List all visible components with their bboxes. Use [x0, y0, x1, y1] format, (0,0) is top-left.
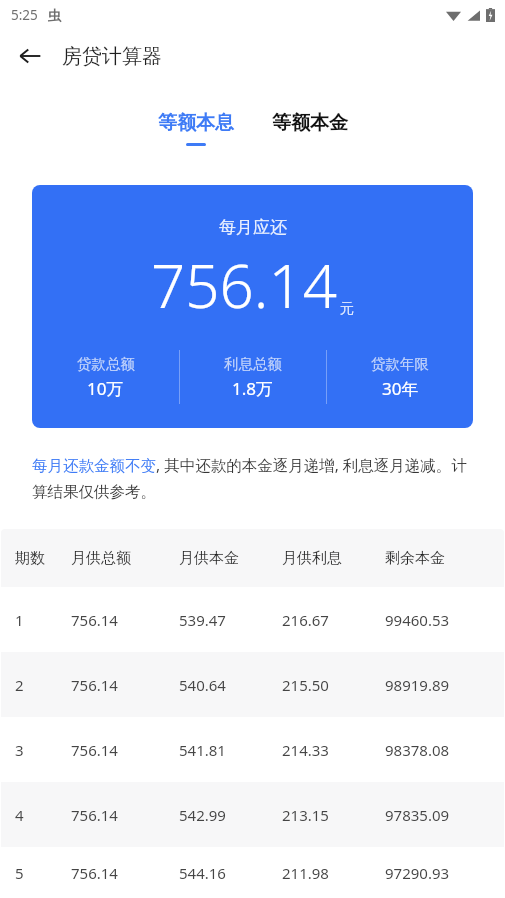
staticText: 756.14	[71, 675, 118, 695]
button[interactable]: 5	[1, 847, 504, 898]
button[interactable]: 3	[1, 717, 504, 782]
button[interactable]: 1	[1, 587, 504, 652]
staticText: 3	[15, 740, 24, 760]
staticText: 756.14	[71, 740, 118, 760]
staticText: 1	[15, 610, 24, 630]
staticText: 1.8万	[232, 377, 274, 400]
staticText: 98378.08	[385, 740, 450, 760]
staticText: 544.16	[179, 863, 226, 883]
staticText: 214.33	[282, 740, 329, 760]
staticText: 元	[340, 300, 354, 318]
button[interactable]: 2	[1, 652, 504, 717]
staticText: 利息总额	[224, 355, 282, 373]
staticText: 贷款年限	[371, 355, 429, 373]
staticText: 每月应还	[219, 217, 287, 238]
staticText: 539.47	[179, 610, 226, 630]
staticText: 虫	[48, 7, 62, 24]
staticText: 期数	[15, 549, 45, 568]
staticText: 215.50	[282, 675, 329, 695]
staticText: 542.99	[179, 805, 226, 825]
staticText: 756.14	[71, 805, 118, 825]
button[interactable]: 每月应还	[32, 185, 473, 428]
staticText: 5	[15, 863, 24, 883]
staticText: 4	[15, 805, 24, 825]
staticText: 98919.89	[385, 675, 450, 695]
staticText: 213.15	[282, 805, 329, 825]
staticText: 月供本金	[179, 549, 239, 568]
staticText: 97835.09	[385, 805, 450, 825]
button[interactable]: 4	[1, 782, 504, 847]
staticText: 99460.53	[385, 610, 450, 630]
staticText: 每月还款金额不变, 其中还款的本金逐月递增, 利息逐月递减。计算结果仅供参考。	[32, 454, 473, 502]
staticText: 211.98	[282, 863, 329, 883]
staticText: 756.14	[71, 610, 118, 630]
staticText: 房贷计算器	[62, 44, 162, 69]
staticText: 97290.93	[385, 863, 450, 883]
staticText: 月供总额	[71, 549, 131, 568]
staticText: 等额本息	[158, 111, 234, 135]
button[interactable]: Back	[10, 36, 50, 76]
staticText: 等额本金	[272, 111, 348, 135]
staticText: 541.81	[179, 740, 226, 760]
staticText: 剩余本金	[385, 549, 445, 568]
button[interactable]: 等额本金	[268, 107, 352, 150]
staticText: 30年	[382, 377, 419, 400]
staticText: 5:25	[11, 6, 38, 24]
staticText: 月供利息	[282, 549, 342, 568]
staticText: 540.64	[179, 675, 226, 695]
button[interactable]: 等额本息	[154, 107, 238, 150]
staticText: 756.14	[151, 244, 337, 326]
staticText: 10万	[87, 377, 124, 400]
staticText: 贷款总额	[77, 355, 135, 373]
staticText: 2	[15, 675, 24, 695]
staticText: 756.14	[71, 863, 118, 883]
staticText: 216.67	[282, 610, 329, 630]
